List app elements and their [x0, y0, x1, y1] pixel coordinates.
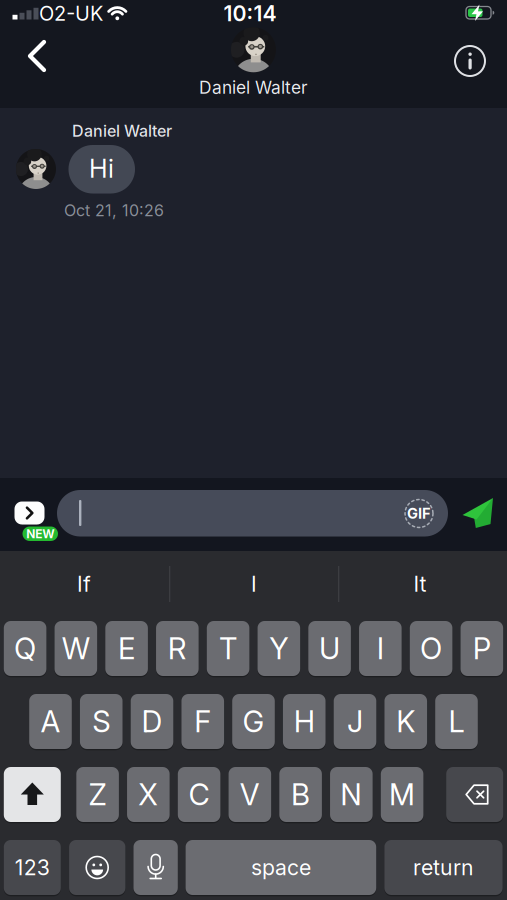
button[interactable]: return [384, 840, 503, 896]
staticText: H [294, 704, 315, 739]
staticText: F [194, 704, 211, 739]
button[interactable]: F [181, 694, 224, 750]
staticText: B [291, 777, 310, 812]
button[interactable]: R [156, 621, 199, 677]
button[interactable]: I [174, 561, 334, 607]
button[interactable]: Info [448, 39, 492, 83]
staticText: Daniel Walter [199, 77, 308, 98]
button[interactable]: Emoji [69, 840, 125, 896]
staticText: O [420, 631, 442, 666]
staticText: NEW [26, 527, 54, 541]
staticText: G [242, 704, 264, 739]
button[interactable]: K [384, 694, 427, 750]
staticText: K [396, 704, 415, 739]
staticText: D [141, 704, 162, 739]
staticText: S [92, 704, 110, 739]
button[interactable]: Delete [446, 767, 503, 823]
staticText: X [138, 777, 158, 812]
button[interactable]: H [283, 694, 325, 750]
staticText: C [189, 777, 210, 812]
staticText: W [62, 631, 90, 666]
button[interactable]: Q [4, 621, 46, 677]
button[interactable]: Send [461, 497, 495, 529]
button[interactable]: Apps [14, 501, 44, 524]
button[interactable]: space [186, 840, 376, 896]
button[interactable]: Back [15, 34, 59, 78]
button[interactable]: Daniel Walter [199, 27, 308, 98]
button[interactable]: It [340, 561, 500, 607]
staticText: R [168, 631, 187, 666]
button[interactable]: Numbers [4, 840, 61, 896]
button[interactable]: If [4, 561, 164, 607]
button[interactable]: S [80, 694, 123, 750]
button[interactable]: D [131, 694, 173, 750]
staticText: J [347, 704, 363, 739]
staticText: Z [89, 777, 107, 812]
staticText: return [413, 855, 474, 880]
staticText: GIF [407, 505, 431, 522]
staticText: Y [269, 631, 288, 666]
button[interactable]: J [334, 694, 376, 750]
button[interactable]: V [229, 767, 271, 823]
staticText: U [319, 631, 340, 666]
staticText: V [240, 777, 260, 812]
button[interactable]: C [178, 767, 220, 823]
staticText: L [448, 704, 464, 739]
button[interactable]: Message [57, 490, 448, 536]
button[interactable]: Y [258, 621, 300, 677]
staticText: N [340, 777, 362, 812]
staticText: O2-UK [39, 2, 103, 25]
button[interactable]: X [127, 767, 170, 823]
staticText: Q [14, 631, 36, 666]
button[interactable]: Dictate [133, 840, 178, 896]
staticText: It [413, 571, 426, 597]
staticText: space [251, 855, 311, 880]
button[interactable]: L [435, 694, 478, 750]
button[interactable]: A [29, 694, 72, 750]
staticText: Daniel Walter [72, 122, 172, 140]
staticText: I [377, 631, 384, 666]
staticText: A [40, 704, 60, 739]
staticText: Oct 21, 10:26 [64, 201, 164, 220]
button[interactable]: M [381, 767, 423, 823]
button[interactable]: B [279, 767, 322, 823]
staticText: 10:14 [223, 1, 276, 26]
staticText: M [389, 777, 415, 812]
staticText: T [219, 631, 237, 666]
staticText: P [473, 631, 491, 666]
staticText: E [118, 631, 135, 666]
staticText: Hi [89, 154, 114, 183]
button[interactable]: N [330, 767, 373, 823]
button[interactable]: W [54, 621, 97, 677]
staticText: 123 [15, 855, 50, 880]
button[interactable]: Z [76, 767, 119, 823]
button[interactable]: E [105, 621, 148, 677]
button[interactable]: U [308, 621, 351, 677]
staticText: I [251, 571, 257, 597]
staticText: If [77, 571, 91, 597]
button[interactable]: P [461, 621, 503, 677]
button[interactable]: O [410, 621, 452, 677]
button[interactable]: G [232, 694, 275, 750]
button[interactable]: Shift [4, 767, 61, 823]
button[interactable]: I [359, 621, 402, 677]
button[interactable]: T [207, 621, 249, 677]
